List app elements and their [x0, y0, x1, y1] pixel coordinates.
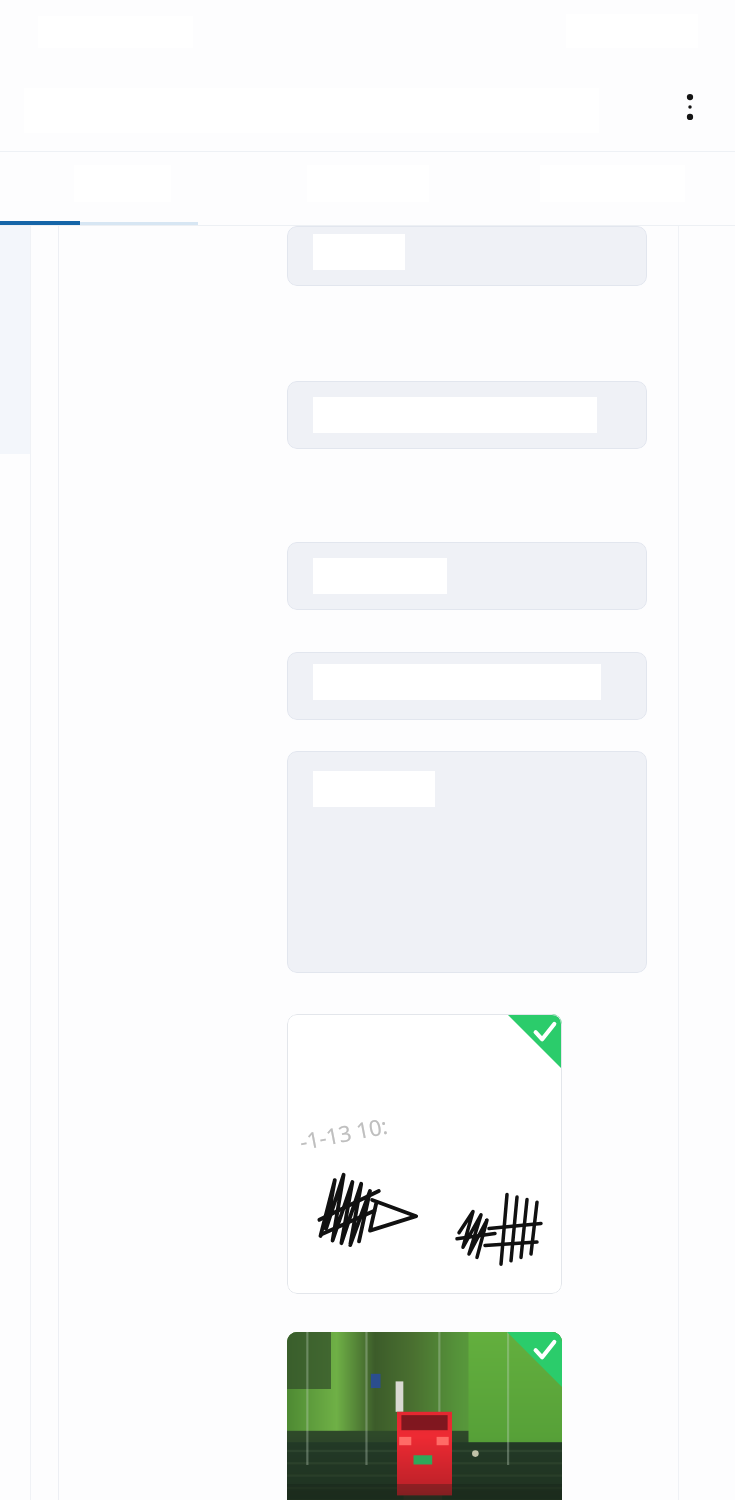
button[interactable] [287, 381, 647, 449]
button[interactable] [287, 542, 647, 610]
button[interactable]: -1-13 10: [287, 1014, 562, 1294]
button[interactable] [287, 226, 647, 286]
button[interactable] [287, 652, 647, 720]
button[interactable] [287, 1332, 562, 1500]
button[interactable] [0, 152, 245, 226]
button[interactable] [287, 751, 647, 973]
staticText: -1-13 10: [297, 1110, 390, 1156]
button[interactable]: More options [659, 76, 721, 138]
